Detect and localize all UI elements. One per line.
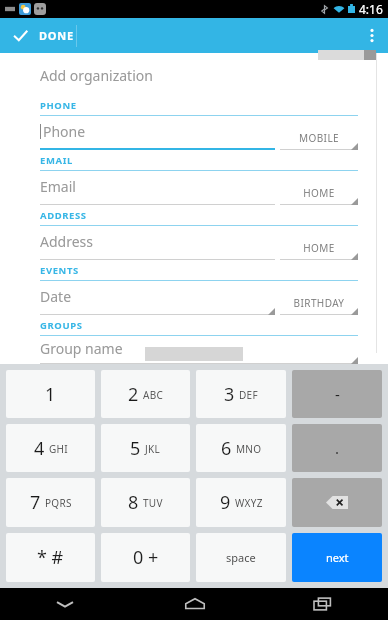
button[interactable]: Phone (40, 116, 275, 150)
staticText: DONE (39, 28, 75, 43)
staticText: next (326, 550, 349, 565)
staticText: EVENTS (40, 264, 79, 277)
button[interactable]: * # (6, 533, 95, 582)
staticText: Date (40, 287, 72, 306)
button[interactable]: 7 (6, 478, 95, 527)
staticText: MNO (236, 442, 262, 456)
button[interactable]: 8 (101, 478, 190, 527)
staticText: 5 (130, 436, 141, 461)
staticText: GHI (49, 442, 68, 456)
staticText: 8 (128, 490, 139, 515)
button[interactable]: HOME (280, 226, 358, 260)
button[interactable]: More options (356, 18, 388, 53)
staticText: EMAIL (40, 154, 73, 167)
staticText: Add organization (40, 66, 153, 85)
button[interactable]: 4 (6, 424, 95, 472)
staticText: Address (40, 232, 93, 251)
staticText: 0 + (133, 545, 159, 570)
staticText: 4:16 (359, 1, 383, 17)
staticText: GROUPS (40, 319, 83, 332)
button[interactable]: MOBILE (280, 116, 358, 150)
staticText: JKL (145, 442, 161, 456)
button[interactable]: 6 (196, 424, 286, 472)
staticText: Email (40, 177, 76, 196)
button[interactable]: space (196, 533, 286, 582)
staticText: DEF (239, 388, 258, 402)
staticText: BIRTHDAY (280, 296, 358, 310)
button[interactable]: Recent apps (259, 588, 388, 620)
button[interactable]: Hide keyboard (0, 588, 130, 620)
button[interactable]: BIRTHDAY (280, 281, 358, 315)
staticText: Phone (43, 122, 86, 141)
staticText: ABC (143, 388, 164, 402)
staticText: 4 (34, 436, 45, 461)
button[interactable]: DONE (0, 18, 89, 53)
button[interactable]: Email (40, 171, 275, 205)
button[interactable]: Address (40, 226, 275, 260)
button[interactable]: 1 (6, 370, 95, 418)
button[interactable]: Date (40, 281, 275, 315)
staticText: 7 (30, 490, 41, 515)
button[interactable]: 3 (196, 370, 286, 418)
staticText: TUV (143, 496, 163, 510)
staticText: * # (37, 545, 64, 570)
staticText: HOME (280, 186, 358, 200)
staticText: space (226, 550, 256, 565)
staticText: PHONE (40, 99, 77, 112)
staticText: MOBILE (280, 131, 358, 145)
staticText: WXYZ (235, 496, 263, 510)
button[interactable]: Home (130, 588, 259, 620)
staticText: 9 (220, 490, 231, 515)
button[interactable]: 5 (101, 424, 190, 472)
staticText: 1 (45, 382, 56, 407)
button[interactable]: next (292, 533, 382, 582)
staticText: ADDRESS (40, 209, 87, 222)
staticText: 6 (221, 436, 232, 461)
button[interactable]: Group name (40, 336, 358, 364)
button[interactable]: 2 (101, 370, 190, 418)
button[interactable]: 0 + (101, 533, 190, 582)
staticText: PQRS (45, 496, 72, 510)
staticText: 3 (224, 382, 235, 407)
button[interactable]: Add organization (40, 62, 358, 88)
staticText: 2 (128, 382, 139, 407)
button[interactable]: - (292, 370, 382, 418)
staticText: HOME (280, 241, 358, 255)
staticText: - (335, 384, 340, 404)
staticText: Group name (40, 339, 123, 358)
button[interactable]: 9 (196, 478, 286, 527)
button[interactable]: HOME (280, 171, 358, 205)
staticText: . (335, 438, 340, 458)
button[interactable]: Delete (292, 478, 382, 527)
